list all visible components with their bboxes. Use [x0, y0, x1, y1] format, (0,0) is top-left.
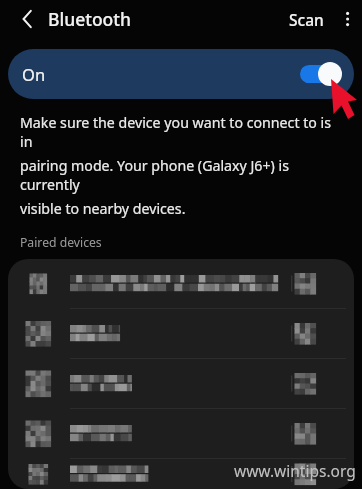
button[interactable]: Paired device — [8, 309, 354, 358]
button[interactable]: On — [8, 49, 354, 99]
button[interactable]: Paired device — [8, 359, 354, 408]
staticText: Paired devices — [20, 234, 102, 251]
button[interactable]: Scan — [285, 5, 328, 34]
staticText: Scan — [289, 9, 324, 30]
button[interactable]: More options — [332, 4, 362, 34]
staticText: pairing mode. Your phone (Galaxy J6+) is… — [20, 156, 342, 194]
staticText: visible to nearby devices. — [20, 199, 186, 218]
staticText: Make sure the device you want to connect… — [20, 113, 342, 151]
staticText: www.wintips.org — [234, 460, 356, 481]
button[interactable]: Paired device — [8, 459, 354, 489]
staticText: On — [22, 63, 46, 85]
staticText: Bluetooth — [48, 7, 131, 31]
button[interactable]: Back — [10, 2, 44, 36]
button[interactable]: Paired device — [8, 409, 354, 458]
button[interactable]: Paired device — [8, 259, 354, 308]
